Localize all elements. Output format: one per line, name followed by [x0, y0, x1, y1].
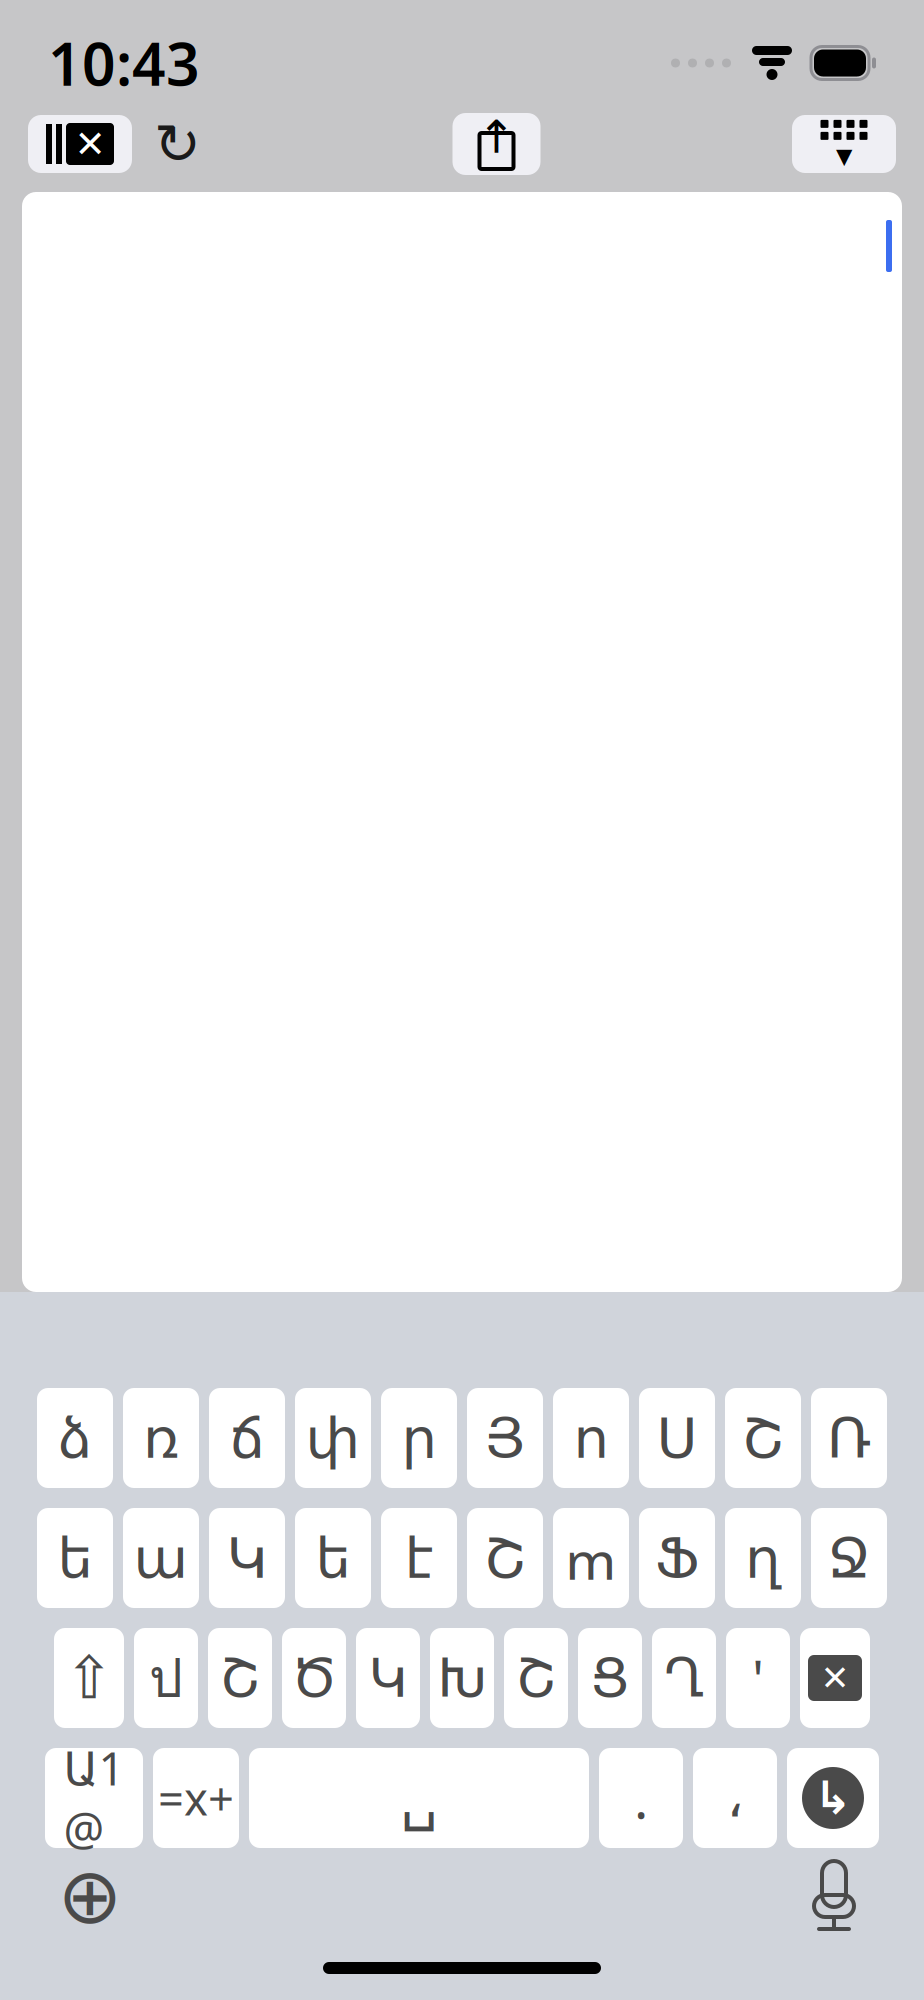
staticText: Ֆ [655, 1526, 699, 1590]
button[interactable]: Delete [800, 1628, 870, 1728]
staticText: Ծ [291, 1648, 337, 1708]
button[interactable]: Share [452, 113, 540, 175]
staticText: ձ [58, 1406, 92, 1470]
button[interactable]: ՠ [553, 1508, 629, 1608]
button[interactable]: Space [249, 1748, 589, 1848]
button[interactable]: ป [134, 1628, 198, 1728]
staticText: Խ [437, 1648, 486, 1708]
button[interactable]: Շ [467, 1508, 543, 1608]
button[interactable]: Hide keyboard [792, 115, 896, 173]
staticText: ⇧ [64, 1645, 113, 1711]
staticText: ▼ [836, 144, 852, 168]
button[interactable]: ձ [37, 1388, 113, 1488]
button[interactable]: է [381, 1508, 457, 1608]
button[interactable]: Ղ [652, 1628, 716, 1728]
staticText: փ [305, 1406, 360, 1470]
staticText: ، [726, 1768, 743, 1828]
button[interactable]: ղ [725, 1508, 801, 1608]
staticText: ✕ [74, 123, 105, 165]
staticText: Շ [220, 1648, 260, 1708]
button[interactable]: Ս [639, 1388, 715, 1488]
staticText: Ռ [827, 1406, 871, 1470]
staticText: ↻ [154, 112, 201, 176]
button[interactable]: Shift [54, 1628, 124, 1728]
button[interactable]: ، [693, 1748, 777, 1848]
button[interactable]: ռ [123, 1388, 199, 1488]
button[interactable]: Ծ [282, 1628, 346, 1728]
button[interactable]: ո [553, 1388, 629, 1488]
button[interactable]: Խ [430, 1628, 494, 1728]
button[interactable]: Ֆ [639, 1508, 715, 1608]
staticText: ␣ [400, 1765, 437, 1831]
button[interactable]: Ջ [811, 1508, 887, 1608]
button[interactable]: =x+ [153, 1748, 239, 1848]
button[interactable]: . [599, 1748, 683, 1848]
staticText: Շ [484, 1526, 526, 1590]
button[interactable]: Return [787, 1748, 879, 1848]
staticText: ե [315, 1526, 350, 1590]
button[interactable]: Ռ [811, 1388, 887, 1488]
button[interactable]: Կ [209, 1508, 285, 1608]
staticText: ՠ [565, 1521, 617, 1595]
staticText: է [404, 1526, 433, 1590]
staticText: ✕ [820, 1658, 849, 1698]
button[interactable]: Clear tag [28, 115, 132, 173]
staticText: ↳ [814, 1772, 852, 1824]
button[interactable]: Ց [578, 1628, 642, 1728]
staticText: ռ [143, 1406, 179, 1470]
staticText: ր [401, 1406, 436, 1470]
staticText: ա [133, 1526, 188, 1590]
staticText: ' [752, 1643, 764, 1713]
button[interactable]: Շ [504, 1628, 568, 1728]
staticText: Շ [516, 1648, 556, 1708]
staticText: ↑ [477, 111, 515, 163]
staticText: Կ [226, 1526, 267, 1590]
staticText: Ա1@ [63, 1738, 124, 1858]
staticText: Ս [656, 1406, 697, 1470]
staticText: ղ [745, 1526, 781, 1590]
button[interactable]: Շ [725, 1388, 801, 1488]
staticText: Կ [368, 1648, 407, 1708]
staticText: . [634, 1763, 648, 1833]
staticText: Ղ [664, 1648, 704, 1708]
staticText: 10:43 [48, 24, 200, 102]
button[interactable]: ե [37, 1508, 113, 1608]
button[interactable]: Dictation [794, 1856, 874, 1936]
button[interactable]: ր [381, 1388, 457, 1488]
staticText: =x+ [158, 1768, 234, 1828]
staticText: ե [57, 1526, 92, 1590]
button[interactable]: ճ [209, 1388, 285, 1488]
staticText: ป [149, 1637, 183, 1719]
button[interactable]: ' [726, 1628, 790, 1728]
staticText: ⊕ [57, 1852, 122, 1940]
staticText: Յ [484, 1406, 525, 1470]
button[interactable]: Ա1@ [45, 1748, 143, 1848]
staticText: ո [573, 1406, 608, 1470]
staticText: Ց [590, 1648, 630, 1708]
button[interactable]: ե [295, 1508, 371, 1608]
button[interactable]: Change keyboard [50, 1856, 130, 1936]
staticText: Ջ [827, 1526, 870, 1590]
staticText: Շ [742, 1406, 784, 1470]
button[interactable]: Կ [356, 1628, 420, 1728]
button[interactable]: Յ [467, 1388, 543, 1488]
button[interactable]: փ [295, 1388, 371, 1488]
staticText: ճ [229, 1406, 264, 1470]
button[interactable]: Շ [208, 1628, 272, 1728]
button[interactable]: ա [123, 1508, 199, 1608]
